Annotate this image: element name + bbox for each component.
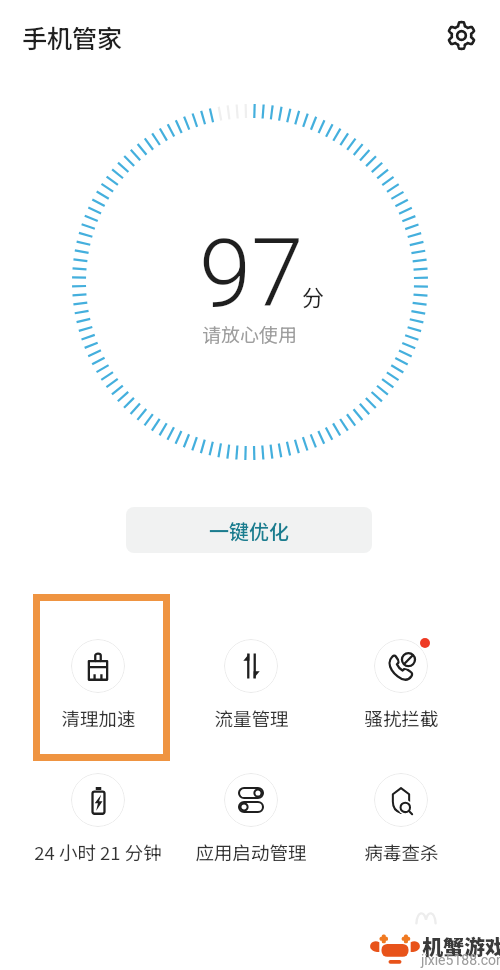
- staticText: 24 小时 21 分钟: [34, 839, 162, 866]
- button[interactable]: 病毒查杀: [321, 766, 481, 856]
- button[interactable]: 24 小时 21 分钟: [18, 766, 178, 856]
- button[interactable]: 一键优化: [126, 507, 372, 553]
- button[interactable]: 流量管理: [171, 632, 331, 722]
- staticText: 97: [199, 219, 304, 329]
- staticText: 病毒查杀: [364, 839, 439, 866]
- staticText: 流量管理: [214, 705, 289, 732]
- staticText: 请放心使用: [202, 320, 298, 348]
- staticText: 清理加速: [61, 705, 136, 732]
- button[interactable]: 清理加速: [18, 632, 178, 722]
- staticText: 机蟹游戏: [422, 931, 500, 961]
- button[interactable]: 骚扰拦截: [321, 632, 481, 722]
- staticText: 手机管家: [22, 19, 123, 55]
- staticText: 分: [302, 280, 325, 312]
- staticText: 骚扰拦截: [364, 705, 439, 732]
- staticText: jixie5188.com: [421, 952, 500, 968]
- button[interactable]: Settings: [437, 11, 485, 59]
- staticText: 应用启动管理: [195, 839, 307, 866]
- button[interactable]: 应用启动管理: [171, 766, 331, 856]
- staticText: 一键优化: [209, 516, 289, 545]
